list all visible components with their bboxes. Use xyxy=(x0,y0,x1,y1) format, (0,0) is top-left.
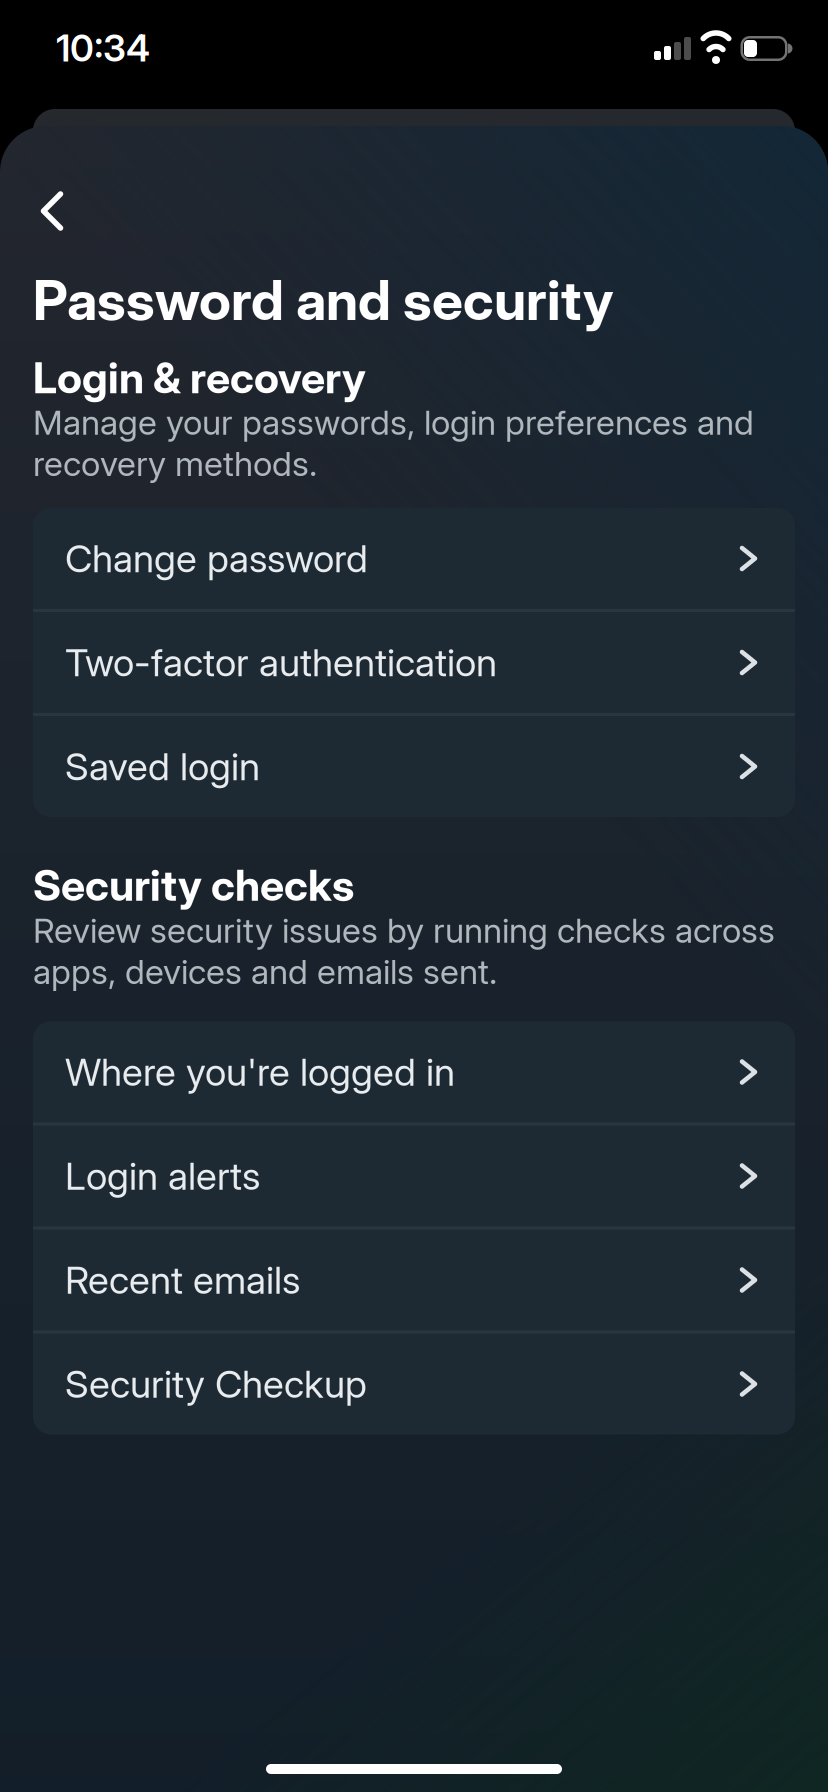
staticText: Manage your passwords, login preferences… xyxy=(33,402,754,484)
staticText: Security Checkup xyxy=(65,1361,367,1407)
button[interactable]: Saved login xyxy=(33,716,795,817)
button[interactable]: Security Checkup xyxy=(33,1333,795,1434)
staticText: Review security issues by running checks… xyxy=(33,910,775,992)
staticText: Saved login xyxy=(65,743,260,789)
button[interactable]: Two-factor authentication xyxy=(33,612,795,713)
button[interactable]: Recent emails xyxy=(33,1229,795,1330)
staticText: Change password xyxy=(65,535,368,581)
staticText: Login & recovery xyxy=(33,351,366,403)
button[interactable]: Login alerts xyxy=(33,1125,795,1226)
staticText: Security checks xyxy=(33,859,354,911)
staticText: Two-factor authentication xyxy=(65,639,497,685)
staticText: Where you're logged in xyxy=(65,1049,455,1095)
staticText: 10:34 xyxy=(56,26,150,70)
button[interactable]: Where you're logged in xyxy=(33,1021,795,1122)
staticText: Login alerts xyxy=(65,1153,260,1199)
button[interactable]: Change password xyxy=(33,508,795,609)
button[interactable]: Back xyxy=(12,176,92,246)
staticText: Password and security xyxy=(33,267,613,333)
staticText: Recent emails xyxy=(65,1257,300,1303)
